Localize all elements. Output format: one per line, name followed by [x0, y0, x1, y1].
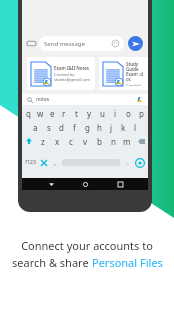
staticText: notes	[36, 96, 50, 103]
button[interactable]: w	[34, 106, 46, 120]
staticText: q	[26, 108, 31, 119]
button[interactable]: t	[70, 106, 83, 120]
button[interactable]: b	[92, 134, 106, 148]
staticText: d	[59, 122, 64, 133]
button[interactable]: p	[135, 106, 148, 120]
button[interactable]: Shift	[22, 134, 36, 148]
staticText: Exam I&II Notes	[54, 65, 89, 71]
staticText: shanta@gmail.com	[54, 77, 91, 82]
button[interactable]: v	[78, 134, 92, 148]
staticText: Study Guide Exam .doc	[126, 61, 144, 82]
button[interactable]: m	[120, 134, 134, 148]
staticText: p	[139, 108, 144, 119]
staticText: s	[47, 122, 51, 133]
staticText: .	[127, 158, 129, 168]
button[interactable]: Backspace	[134, 134, 148, 148]
staticText: z	[41, 136, 45, 147]
other: Attach	[27, 39, 36, 48]
button[interactable]: Study Guide Exam .doc	[99, 57, 148, 90]
button[interactable]: a	[29, 120, 42, 134]
staticText: e	[50, 108, 55, 119]
button[interactable]: h	[93, 120, 105, 134]
staticText: b	[97, 136, 102, 147]
staticText: x	[55, 136, 60, 147]
button[interactable]: ?123	[22, 148, 38, 177]
staticText: y	[87, 108, 92, 119]
button[interactable]: Exam I&II Notes	[27, 57, 95, 90]
button[interactable]: q	[22, 106, 34, 120]
button[interactable]: ,	[50, 148, 59, 177]
staticText: search & share	[12, 255, 92, 270]
staticText: o	[126, 108, 131, 119]
staticText: j	[110, 122, 113, 133]
staticText: r	[62, 108, 66, 119]
button[interactable]: Home	[79, 178, 91, 190]
button[interactable]: j	[105, 120, 117, 134]
button[interactable]: Send	[128, 36, 143, 51]
button[interactable]: z	[36, 134, 50, 148]
staticText: k	[121, 122, 126, 133]
button[interactable]: i	[109, 106, 122, 120]
staticText: g	[85, 122, 90, 133]
staticText: Created by	[126, 83, 144, 86]
button[interactable]: k	[117, 120, 129, 134]
button[interactable]: c	[64, 134, 78, 148]
staticText: t	[75, 108, 78, 119]
button[interactable]: notes	[22, 94, 148, 105]
staticText: l	[134, 122, 137, 133]
staticText: m	[123, 136, 131, 147]
staticText: i	[114, 108, 117, 119]
staticText: c	[69, 136, 73, 147]
button[interactable]: e	[46, 106, 58, 120]
button[interactable]: x	[50, 134, 64, 148]
staticText: n	[111, 136, 116, 147]
button[interactable]: d	[55, 120, 68, 134]
staticText: Connect your accounts to	[21, 238, 153, 253]
staticText: w	[37, 108, 44, 119]
button[interactable]: u	[96, 106, 109, 120]
staticText: v	[83, 136, 88, 147]
button[interactable]: f	[68, 120, 81, 134]
staticText: u	[100, 108, 105, 119]
button[interactable]: Recents	[114, 178, 126, 190]
button[interactable]: y	[83, 106, 96, 120]
staticText: Send message	[44, 40, 85, 48]
button[interactable]: r	[58, 106, 70, 120]
staticText: Personal Files	[92, 255, 163, 270]
staticText: ?123	[25, 159, 36, 166]
button[interactable]: l	[129, 120, 141, 134]
button[interactable]: .	[123, 148, 132, 177]
staticText: f	[73, 122, 76, 133]
button[interactable]: n	[106, 134, 120, 148]
button[interactable]: o	[122, 106, 135, 120]
button[interactable]: Enter	[132, 148, 148, 177]
staticText: ,	[54, 158, 56, 168]
staticText: a	[33, 122, 38, 133]
button[interactable]: Emoji	[38, 148, 50, 177]
button[interactable]: Send message	[39, 36, 124, 51]
button[interactable]: s	[42, 120, 55, 134]
button[interactable]: g	[81, 120, 93, 134]
button[interactable]: Back	[45, 178, 57, 190]
staticText: Created by	[54, 72, 75, 77]
staticText: h	[97, 122, 102, 133]
